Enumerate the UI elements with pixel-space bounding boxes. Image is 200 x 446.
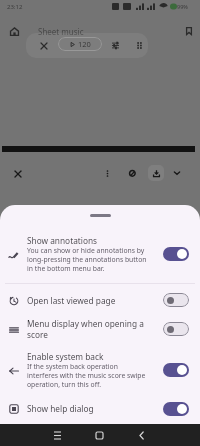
- staticText: 23:12: [7, 3, 23, 11]
- button[interactable]: Download: [148, 165, 164, 181]
- staticText: Open last viewed page: [27, 295, 116, 306]
- staticText: 99%: [177, 3, 188, 10]
- button[interactable]: Show help dialog: [0, 396, 200, 421]
- button[interactable]: Home: [88, 424, 110, 446]
- button[interactable]: More tools: [133, 39, 146, 52]
- button[interactable]: Open last viewed page: [0, 286, 200, 314]
- button[interactable]: Recent apps: [46, 424, 68, 446]
- staticText: Enable system back: [27, 351, 104, 362]
- staticText: Show help dialog: [27, 403, 94, 414]
- button[interactable]: Menu display when opening a score: [0, 314, 200, 344]
- button[interactable]: Adjust: [109, 39, 122, 52]
- staticText: You can show or hide annotations by long…: [27, 246, 147, 273]
- button[interactable]: Toggle off: [163, 322, 189, 336]
- staticText: Show annotations: [27, 235, 98, 246]
- button[interactable]: More options: [101, 167, 114, 180]
- button[interactable]: Close score: [11, 167, 24, 180]
- button[interactable]: Toggle on: [163, 402, 189, 416]
- button[interactable]: Toggle on: [163, 363, 189, 377]
- button[interactable]: Show annotations: [0, 228, 200, 280]
- button[interactable]: Toggle on: [163, 247, 189, 261]
- staticText: Sheet music: [38, 26, 84, 37]
- staticText: Menu display when opening a score: [27, 318, 144, 340]
- button[interactable]: Toggle off: [163, 293, 189, 307]
- button[interactable]: Back: [130, 424, 152, 446]
- button[interactable]: Home: [6, 23, 22, 39]
- button[interactable]: Close: [37, 39, 50, 52]
- staticText: If the system back operation interferes …: [27, 362, 146, 389]
- button[interactable]: Collapse: [170, 166, 183, 179]
- button[interactable]: Tempo 120: [58, 37, 102, 51]
- button[interactable]: Bookmark: [181, 23, 196, 38]
- staticText: 120: [78, 39, 91, 49]
- button[interactable]: Enable system back: [0, 344, 200, 396]
- button[interactable]: Annotations: [125, 166, 139, 180]
